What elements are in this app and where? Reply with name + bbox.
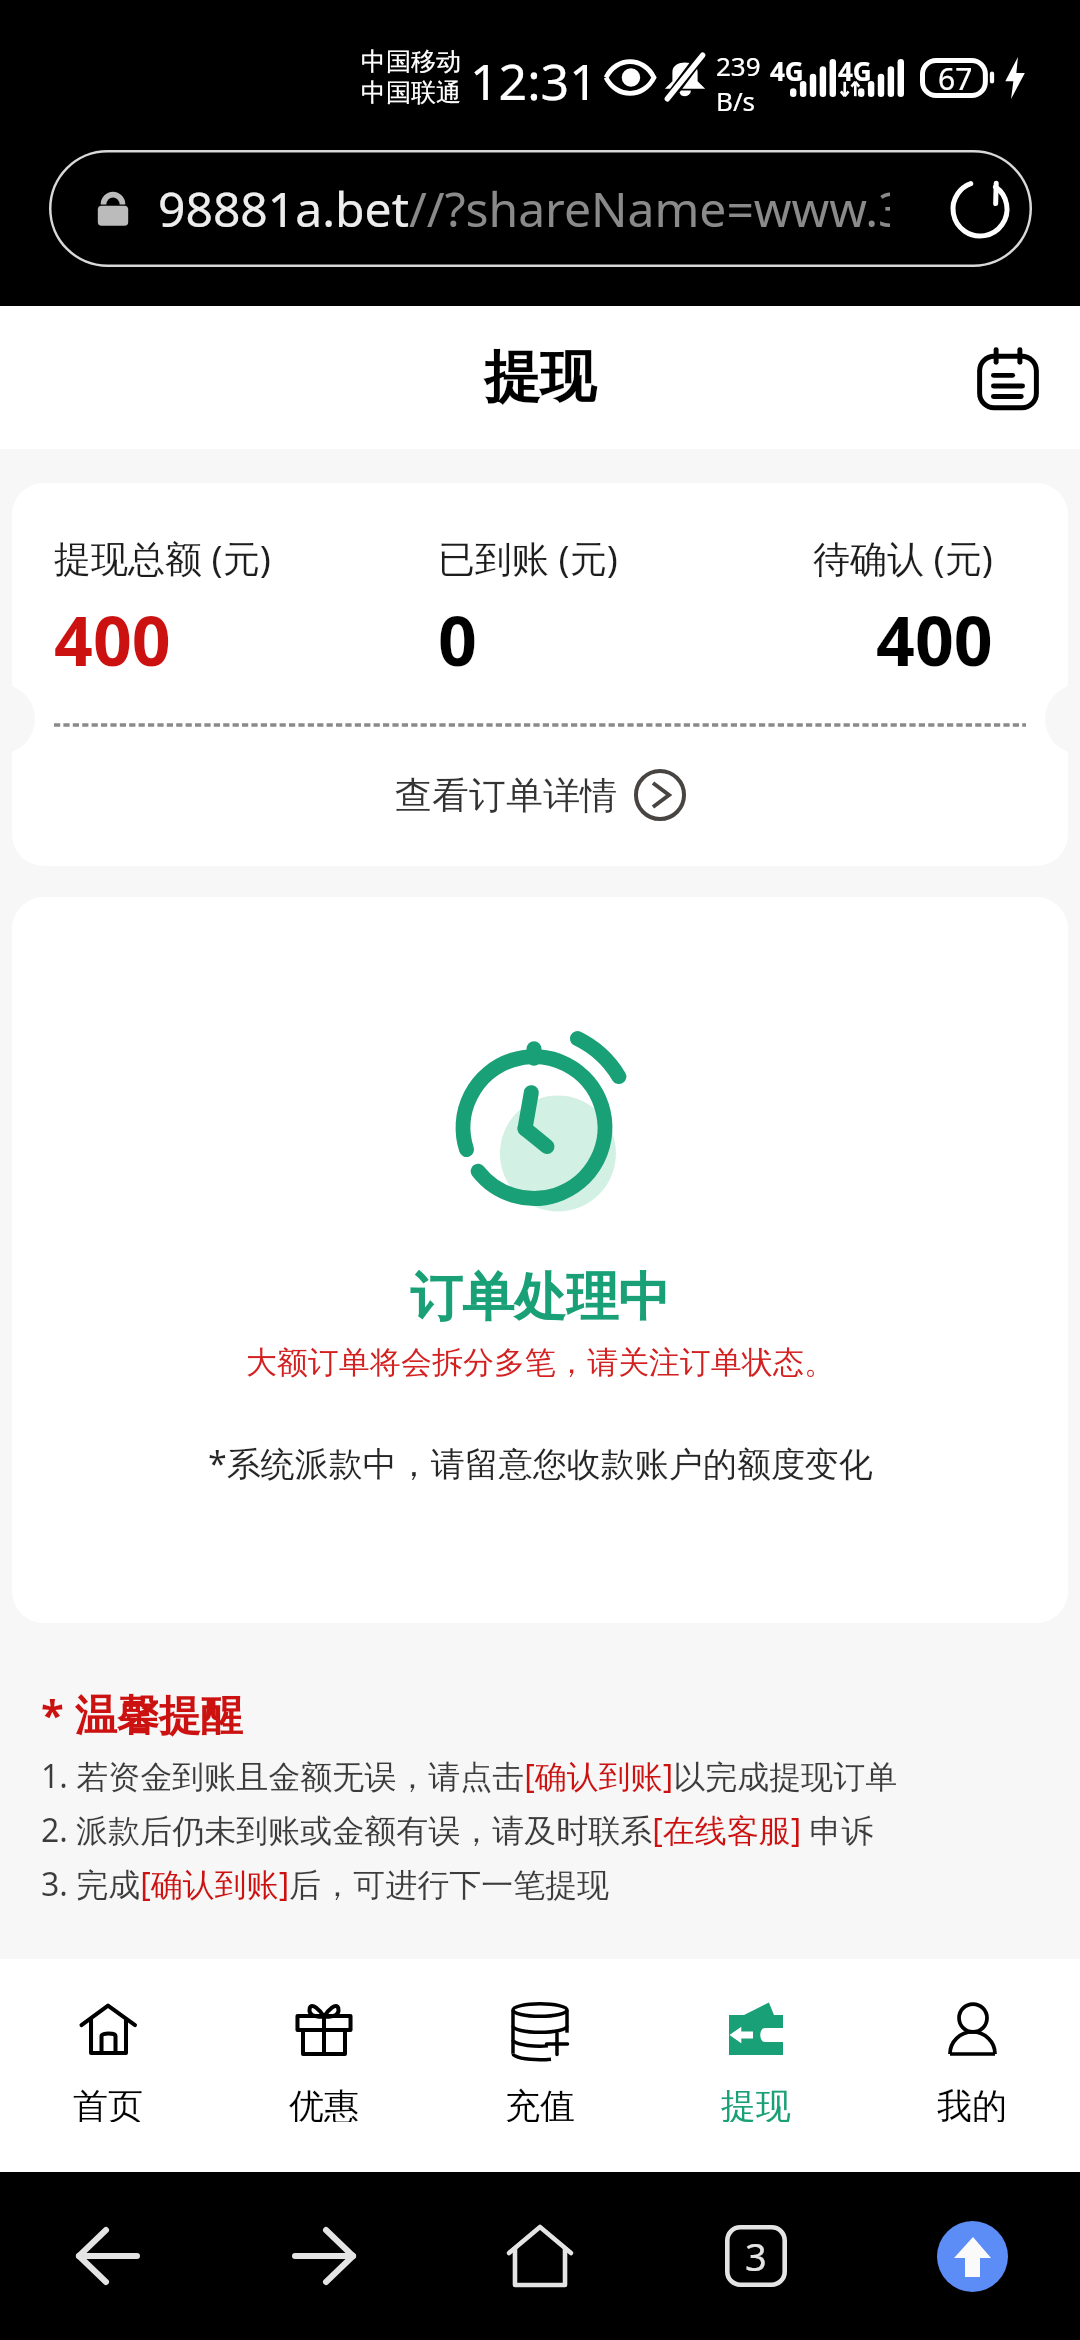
staticText: 3 bbox=[745, 2230, 767, 2282]
staticText: 中国移动 bbox=[361, 46, 461, 77]
staticText: 0 bbox=[438, 593, 477, 686]
button[interactable]: Back bbox=[0, 2172, 216, 2340]
staticText: 充值 bbox=[505, 2084, 575, 2122]
staticText: 98881a.bet//?shareName=www.32 bbox=[158, 176, 890, 241]
button[interactable]: 98881a.bet//?shareName=www.32 bbox=[49, 150, 1032, 267]
staticText: 400 bbox=[876, 593, 993, 686]
staticText: *系统派款中，请留意您收款账户的额度变化 bbox=[208, 1440, 873, 1486]
staticText: 中国联通 bbox=[361, 77, 461, 108]
button[interactable]: 查看订单详情 bbox=[12, 727, 1068, 853]
staticText: 待确认 (元) bbox=[813, 532, 993, 583]
staticText: 400 bbox=[54, 593, 171, 686]
staticText: 239 bbox=[716, 48, 761, 83]
staticText: 2. 派款后仍未到账或金额有误，请及时联系[在线客服] 申诉 bbox=[41, 1808, 874, 1852]
button[interactable]: 我的 bbox=[864, 1959, 1080, 2172]
button[interactable]: Reload bbox=[942, 171, 1018, 247]
staticText: 1. 若资金到账且金额无误，请点击[确认到账]以完成提现订单 bbox=[41, 1754, 898, 1798]
staticText: 提现 bbox=[721, 2084, 791, 2122]
button[interactable]: Scroll to top bbox=[864, 2172, 1080, 2340]
button[interactable]: Order records bbox=[960, 330, 1056, 426]
staticText: 67 bbox=[938, 58, 973, 98]
staticText: * 温馨提醒 bbox=[41, 1685, 243, 1742]
staticText: 提现总额 (元) bbox=[54, 532, 271, 583]
button[interactable]: 首页 bbox=[0, 1959, 216, 2172]
button[interactable]: 提现 bbox=[648, 1959, 864, 2172]
staticText: 12:31 bbox=[470, 47, 598, 115]
staticText: 3. 完成[确认到账]后，可进行下一笔提现 bbox=[41, 1862, 610, 1906]
staticText: 4G bbox=[838, 53, 872, 88]
staticText: 已到账 (元) bbox=[438, 532, 618, 583]
staticText: 提现 bbox=[484, 342, 596, 413]
staticText: B/s bbox=[716, 83, 756, 118]
staticText: 我的 bbox=[937, 2084, 1007, 2122]
button[interactable]: 优惠 bbox=[216, 1959, 432, 2172]
button[interactable]: 充值 bbox=[432, 1959, 648, 2172]
staticText: 优惠 bbox=[289, 2084, 359, 2122]
staticText: 4G bbox=[770, 53, 804, 88]
staticText: 大额订单将会拆分多笔，请关注订单状态。 bbox=[246, 1343, 835, 1382]
button[interactable]: Forward bbox=[216, 2172, 432, 2340]
button[interactable]: Tabs bbox=[648, 2172, 864, 2340]
button[interactable]: Home bbox=[432, 2172, 648, 2340]
staticText: 首页 bbox=[73, 2084, 143, 2122]
staticText: 订单处理中 bbox=[410, 1265, 670, 1331]
staticText: 查看订单详情 bbox=[395, 772, 617, 819]
